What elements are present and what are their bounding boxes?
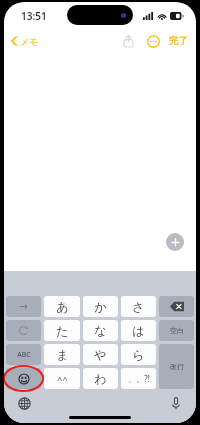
staticText: ら [132,347,145,362]
staticText: わ [94,371,107,386]
staticText: メモ [20,36,39,47]
button[interactable]: た [44,320,80,341]
button[interactable]: は [121,320,156,341]
button[interactable]: 、。?! [121,368,156,389]
staticText: 空白 [170,326,184,335]
button[interactable]: メモ [10,35,39,47]
staticText: 完了 [169,35,188,47]
button[interactable]: Delete [159,296,194,317]
staticText: さ [132,299,145,314]
button[interactable]: Undo [6,320,41,341]
button[interactable]: Emoji [6,368,41,389]
button[interactable]: か [83,296,118,317]
button[interactable]: ABC [6,344,41,365]
button[interactable]: や [83,344,118,365]
button[interactable]: ま [44,344,80,365]
staticText: か [94,299,107,314]
staticText: な [94,323,107,338]
staticText: た [56,323,69,338]
button[interactable]: More options [145,33,161,49]
staticText: ^^ [57,373,68,385]
staticText: 13:51 [21,9,47,23]
button[interactable]: Next candidate [6,296,41,317]
staticText: ABC [17,350,31,360]
button[interactable]: わ [83,368,118,389]
button[interactable]: さ [121,296,156,317]
staticText: 、。?! [128,373,150,384]
staticText: あ [56,299,69,314]
button[interactable]: Share [120,33,136,49]
button[interactable]: Add attachment [166,233,184,251]
button[interactable]: ら [121,344,156,365]
button[interactable]: ^^ [44,368,80,389]
staticText: ま [56,347,69,362]
button[interactable]: Switch keyboard [17,396,32,411]
button[interactable]: 完了 [169,35,188,47]
button[interactable]: な [83,320,118,341]
button[interactable]: Dictation [168,396,183,411]
button[interactable]: 空白 [159,320,194,341]
staticText: → [19,301,28,313]
staticText: や [94,347,107,362]
button[interactable]: 改行 [159,344,194,389]
staticText: 改行 [170,362,184,371]
staticText: は [132,323,145,338]
button[interactable]: あ [44,296,80,317]
